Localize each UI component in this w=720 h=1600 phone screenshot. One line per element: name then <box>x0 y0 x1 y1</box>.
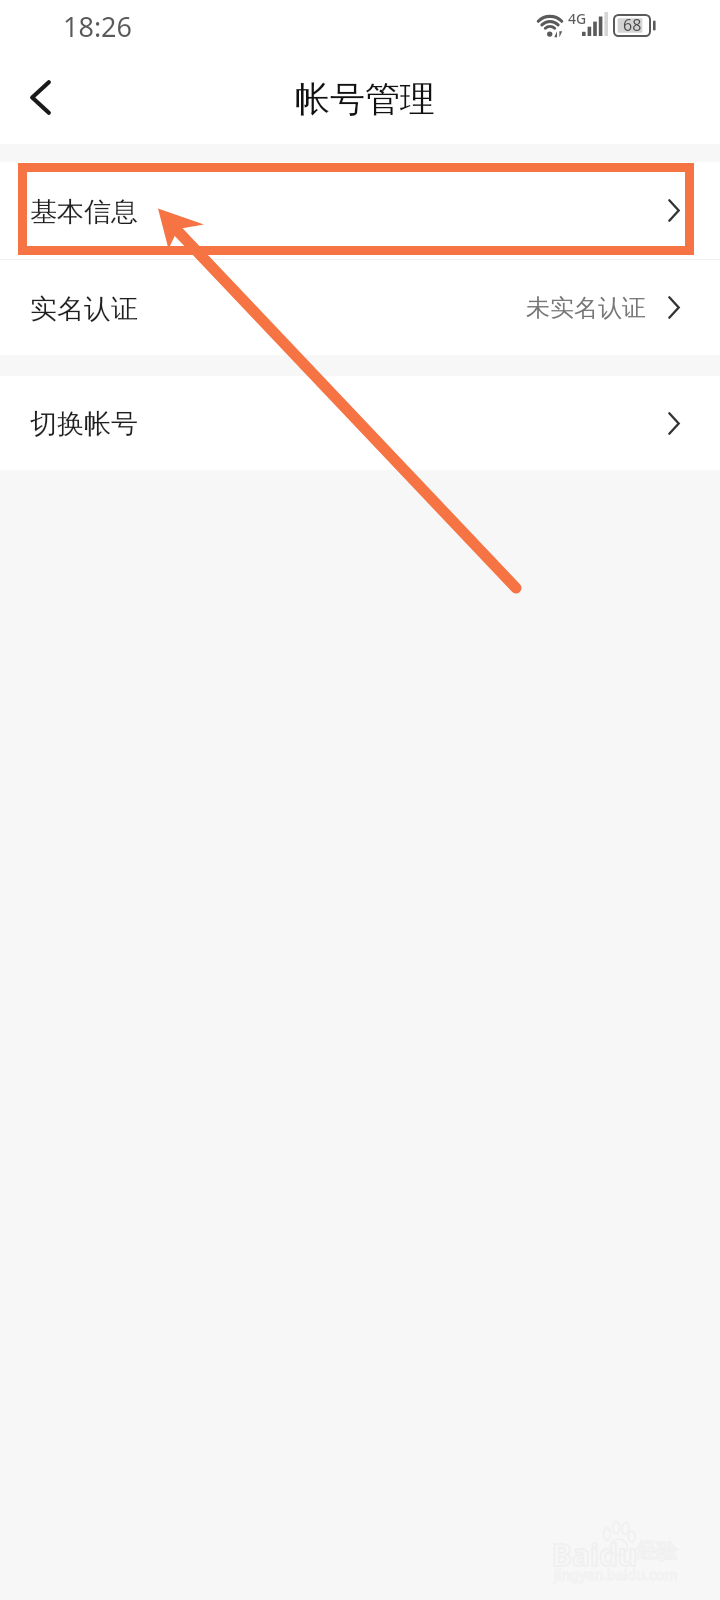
button[interactable]: Back <box>0 56 80 144</box>
button[interactable]: 切换帐号 <box>0 376 720 470</box>
button[interactable]: 基本信息 <box>0 162 720 259</box>
staticText: 切换帐号 <box>30 407 138 441</box>
staticText: 4G <box>568 9 587 28</box>
staticText: 实名认证 <box>30 292 138 326</box>
staticText: 68 <box>623 14 642 36</box>
staticText: 帐号管理 <box>295 77 435 121</box>
staticText: 18:26 <box>63 8 133 45</box>
staticText: 未实名认证 <box>526 293 646 323</box>
button[interactable]: 实名认证 <box>0 260 720 355</box>
staticText: 基本信息 <box>30 195 138 229</box>
